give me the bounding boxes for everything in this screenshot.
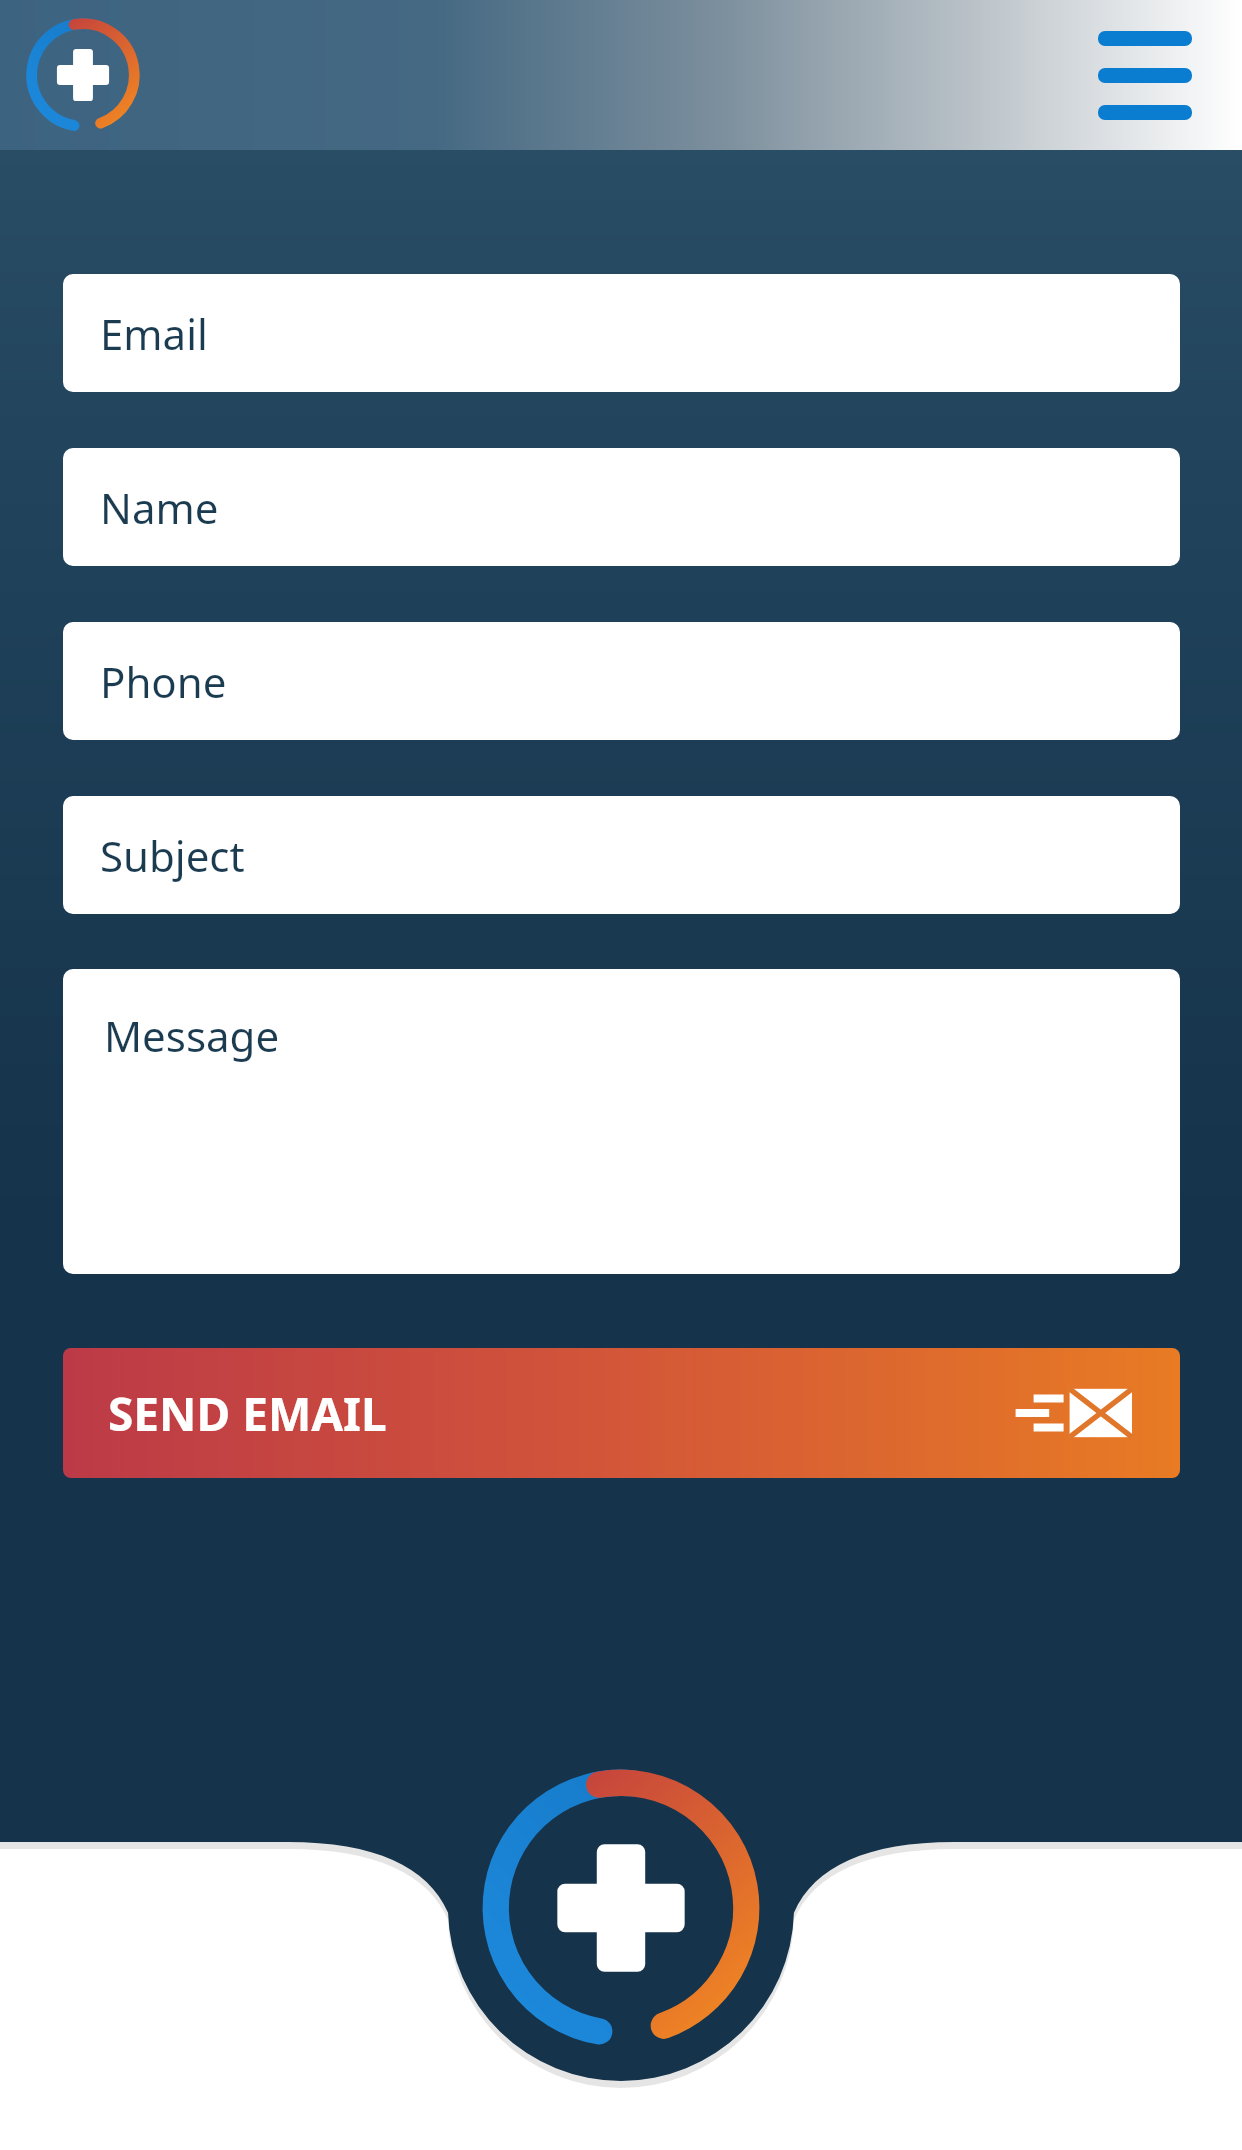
button[interactable]: SEND EMAIL	[63, 1348, 1180, 1478]
staticText: Phone	[100, 653, 227, 710]
button[interactable]: Message	[63, 969, 1180, 1274]
staticText: Subject	[100, 827, 245, 884]
button[interactable]: Phone	[63, 622, 1180, 740]
button[interactable]: Menu	[1092, 19, 1198, 132]
staticText: Email	[100, 305, 208, 362]
button[interactable]: Subject	[63, 796, 1180, 914]
staticText: Message	[104, 1007, 280, 1064]
button[interactable]: Name	[63, 448, 1180, 566]
staticText: SEND EMAIL	[108, 1382, 387, 1445]
staticText: Name	[100, 479, 219, 536]
button[interactable]: Home logo	[20, 12, 146, 138]
other: Send	[1012, 1382, 1132, 1444]
button[interactable]: Email	[63, 274, 1180, 392]
